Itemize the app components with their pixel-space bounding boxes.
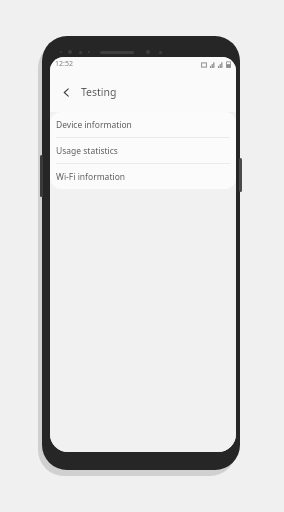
staticText: Wi-Fi information — [56, 171, 126, 183]
button[interactable]: Usage statistics — [50, 138, 236, 164]
button[interactable]: Wi-Fi information — [50, 164, 236, 189]
button[interactable]: Device information — [50, 112, 236, 138]
staticText: Usage statistics — [56, 145, 118, 157]
button[interactable]: Back — [55, 81, 77, 103]
staticText: Testing — [81, 85, 117, 99]
staticText: Device information — [56, 119, 132, 131]
staticText: 12:52 — [55, 59, 73, 69]
